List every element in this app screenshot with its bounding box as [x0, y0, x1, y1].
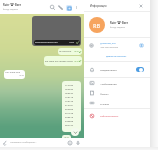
- staticText: Bore: [122, 21, 129, 25]
- button[interactable]: More options: [74, 5, 79, 10]
- button[interactable]: Изображения: [89, 78, 150, 88]
- button[interactable]: Attach file: [2, 140, 8, 146]
- button[interactable]: Chat info: [65, 4, 72, 11]
- staticText: No I mare tare: [5, 71, 20, 74]
- staticText: 19:42: [69, 41, 75, 44]
- button[interactable]: Copy username: [139, 43, 144, 48]
- staticText: @rainbow_usa: [100, 42, 116, 45]
- staticText: 512781: [65, 103, 74, 106]
- button[interactable]: Video message: [32, 16, 81, 46]
- staticText: 453293: [65, 87, 74, 90]
- button[interactable]: Файлы: [89, 88, 150, 98]
- staticText: Ruin: [3, 3, 9, 7]
- button[interactable]: @rainbow_usa: [89, 38, 144, 52]
- staticText: RB: [93, 22, 101, 29]
- staticText: 19:51: [74, 60, 79, 63]
- button[interactable]: Search: [49, 4, 56, 11]
- button[interactable]: Scroll to bottom: [71, 128, 79, 136]
- staticText: 540808: [65, 119, 74, 122]
- button[interactable]: Заблокировать: [89, 109, 150, 122]
- staticText: 531378: [65, 111, 74, 114]
- staticText: are there any review yards?: [45, 60, 73, 63]
- staticText: 19:52: [19, 74, 24, 77]
- button[interactable]: are there any review yards?: [44, 56, 82, 66]
- staticText: 584154: [65, 123, 74, 126]
- staticText: был(а) недавно: [3, 8, 18, 11]
- staticText: 538819: [65, 115, 74, 118]
- staticText: Ruin: [110, 21, 116, 25]
- staticText: 479775: [65, 99, 74, 102]
- staticText: Информация: [90, 4, 107, 7]
- button[interactable]: Close: [138, 3, 144, 9]
- staticText: Имя пользователя: [100, 46, 119, 49]
- button[interactable]: Call: [57, 4, 64, 11]
- staticText: Bore: [15, 3, 22, 7]
- button[interactable]: Уведомления: [89, 62, 144, 77]
- staticText: Ссылки: [100, 102, 110, 105]
- staticText: 414782: [65, 83, 74, 86]
- button[interactable]: Record voice message: [75, 140, 81, 146]
- staticText: 19:47: [64, 136, 69, 139]
- button[interactable]: No I mare tare: [4, 70, 25, 79]
- staticText: Уведомления: [100, 68, 136, 71]
- staticText: Заблокировать: [100, 114, 119, 117]
- staticText: Изображения: [100, 82, 117, 85]
- staticText: ДОБАВИТЬ КОНТАКТ: [106, 55, 127, 58]
- button[interactable]: 414782: [62, 81, 81, 132]
- staticText: Файлы: [100, 92, 109, 95]
- button[interactable]: RB: [89, 12, 146, 37]
- staticText: ne sahil'd're: [59, 50, 72, 53]
- staticText: Напишите сообщение...: [10, 141, 37, 144]
- button[interactable]: ne sahil'd're: [58, 48, 82, 55]
- staticText: был(а) недавно: [110, 26, 125, 29]
- button[interactable]: Emoji: [67, 140, 73, 146]
- staticText: 479719: [65, 95, 74, 98]
- staticText: 19:51: [74, 50, 79, 53]
- button[interactable]: Ссылки: [89, 98, 150, 108]
- staticText: 469234: [65, 91, 74, 94]
- staticText: 523905: [65, 107, 74, 110]
- staticText: extpwadfmrvdupuf.mp4: [35, 41, 58, 44]
- button[interactable]: ДОБАВИТЬ КОНТАКТ: [84, 52, 150, 61]
